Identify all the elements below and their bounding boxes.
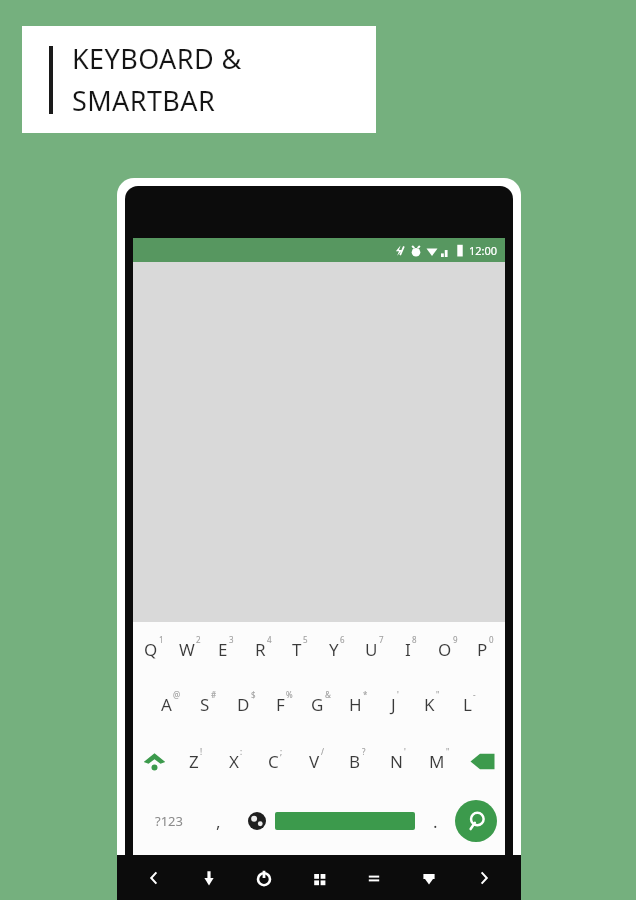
staticText: F bbox=[276, 693, 285, 716]
button[interactable]: S bbox=[189, 677, 227, 732]
staticText: T bbox=[292, 638, 302, 661]
staticText: 9 bbox=[453, 634, 458, 645]
button[interactable]: G bbox=[302, 677, 339, 732]
staticText: B bbox=[349, 750, 361, 773]
staticText: A bbox=[161, 693, 172, 716]
staticText: Y bbox=[329, 638, 339, 661]
staticText: ?123 bbox=[155, 812, 183, 830]
button[interactable]: Hide keyboard bbox=[412, 861, 446, 895]
staticText: 8 bbox=[412, 634, 417, 645]
button[interactable]: J bbox=[376, 677, 413, 732]
staticText: K bbox=[424, 693, 435, 716]
button[interactable]: D bbox=[227, 677, 265, 732]
button[interactable]: F bbox=[265, 677, 302, 732]
staticText: * bbox=[363, 689, 368, 700]
staticText: % bbox=[286, 689, 293, 700]
staticText: 0 bbox=[489, 634, 494, 645]
staticText: X bbox=[229, 750, 239, 773]
staticText: ; bbox=[280, 746, 283, 757]
staticText: V bbox=[309, 750, 320, 773]
staticText: S bbox=[200, 693, 210, 716]
button[interactable]: O bbox=[429, 622, 466, 677]
button[interactable]: . bbox=[415, 790, 455, 852]
button[interactable]: , bbox=[197, 790, 239, 852]
staticText: L bbox=[463, 693, 472, 716]
staticText: H bbox=[349, 693, 362, 716]
staticText: ' bbox=[404, 746, 406, 757]
button[interactable]: L bbox=[450, 677, 487, 732]
staticText: N bbox=[390, 750, 403, 773]
staticText: ? bbox=[362, 746, 366, 757]
button[interactable]: Power bbox=[247, 861, 281, 895]
staticText: " bbox=[436, 689, 440, 700]
button[interactable]: M bbox=[418, 732, 459, 790]
staticText: W bbox=[179, 638, 195, 661]
staticText: - bbox=[473, 689, 476, 700]
button[interactable]: T bbox=[281, 622, 318, 677]
button[interactable]: W bbox=[171, 622, 207, 677]
staticText: . bbox=[433, 810, 438, 833]
button[interactable]: Back bbox=[137, 861, 171, 895]
staticText: & bbox=[325, 689, 331, 700]
button[interactable]: A bbox=[151, 677, 189, 732]
button[interactable]: X bbox=[215, 732, 255, 790]
staticText: D bbox=[237, 693, 250, 716]
staticText: 6 bbox=[340, 634, 345, 645]
staticText: / bbox=[321, 746, 324, 757]
button[interactable]: Apps bbox=[302, 861, 336, 895]
button[interactable]: Shift bbox=[133, 732, 175, 790]
staticText: 3 bbox=[229, 634, 234, 645]
button[interactable]: U bbox=[355, 622, 392, 677]
button[interactable]: K bbox=[413, 677, 450, 732]
button[interactable]: Space bbox=[275, 812, 415, 830]
button[interactable]: N bbox=[377, 732, 418, 790]
staticText: ' bbox=[397, 689, 399, 700]
staticText: SMARTBAR bbox=[72, 82, 216, 119]
staticText: P bbox=[477, 638, 488, 661]
staticText: KEYBOARD & bbox=[72, 40, 242, 77]
staticText: 7 bbox=[379, 634, 384, 645]
staticText: U bbox=[365, 638, 378, 661]
staticText: ! bbox=[200, 746, 203, 757]
button[interactable]: Y bbox=[318, 622, 355, 677]
staticText: 2 bbox=[196, 634, 201, 645]
staticText: " bbox=[446, 746, 450, 757]
staticText: Q bbox=[144, 638, 158, 661]
button[interactable]: ?123 bbox=[141, 790, 197, 852]
staticText: J bbox=[391, 693, 396, 716]
staticText: I bbox=[405, 638, 411, 661]
staticText: # bbox=[211, 689, 217, 700]
button[interactable]: Forward bbox=[467, 861, 501, 895]
button[interactable]: H bbox=[339, 677, 376, 732]
button[interactable]: Backspace bbox=[459, 732, 505, 790]
button[interactable]: Z bbox=[175, 732, 215, 790]
staticText: 1 bbox=[159, 634, 164, 645]
staticText: O bbox=[438, 638, 452, 661]
staticText: C bbox=[268, 750, 279, 773]
button[interactable]: Switch language bbox=[239, 790, 275, 852]
staticText: : bbox=[240, 746, 243, 757]
button[interactable]: Download bbox=[192, 861, 226, 895]
button[interactable]: B bbox=[336, 732, 377, 790]
staticText: E bbox=[218, 638, 228, 661]
staticText: 4 bbox=[267, 634, 272, 645]
button[interactable]: C bbox=[255, 732, 295, 790]
button[interactable]: I bbox=[392, 622, 429, 677]
button[interactable]: Q bbox=[135, 622, 171, 677]
button[interactable]: Search bbox=[455, 800, 497, 842]
staticText: $ bbox=[251, 689, 256, 700]
staticText: , bbox=[216, 810, 221, 833]
button[interactable]: Menu bbox=[357, 861, 391, 895]
staticText: 5 bbox=[303, 634, 308, 645]
button[interactable]: R bbox=[244, 622, 281, 677]
button[interactable]: E bbox=[207, 622, 244, 677]
staticText: R bbox=[255, 638, 266, 661]
button[interactable]: V bbox=[295, 732, 336, 790]
button[interactable]: P bbox=[466, 622, 503, 677]
staticText: Z bbox=[189, 750, 199, 773]
staticText: 12:00 bbox=[469, 243, 498, 258]
staticText: M bbox=[429, 750, 445, 773]
staticText: @ bbox=[173, 689, 181, 700]
staticText: G bbox=[311, 693, 324, 716]
